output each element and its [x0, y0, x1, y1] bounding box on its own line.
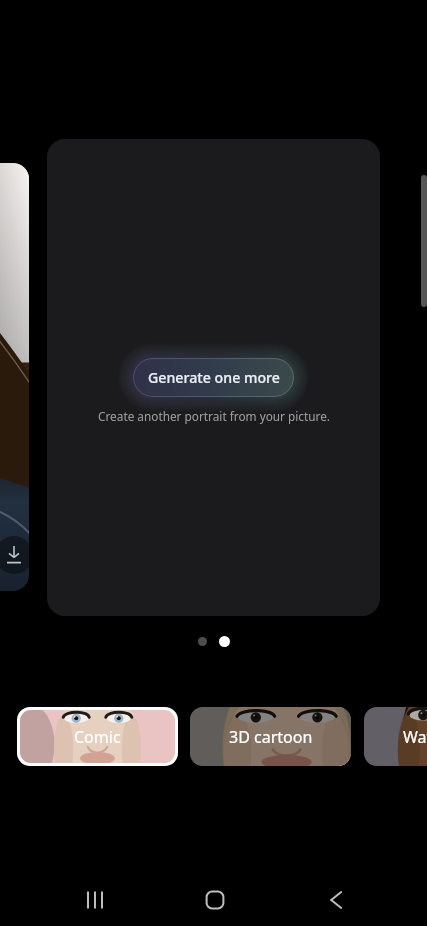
staticText: Create another portrait from your pictur…: [98, 408, 330, 424]
staticText: Comic: [74, 726, 121, 748]
button[interactable]: Recent apps: [54, 860, 135, 926]
button[interactable]: Download: [0, 536, 29, 574]
staticText: Watercolor: [403, 726, 427, 748]
staticText: Generate one more: [148, 368, 280, 387]
button[interactable]: Home: [174, 860, 255, 926]
button[interactable]: Watercolor: [364, 707, 427, 766]
button[interactable]: Generate one more: [118, 343, 309, 412]
button[interactable]: 3D cartoon: [190, 707, 351, 766]
staticText: 3D cartoon: [229, 726, 313, 748]
button[interactable]: Back: [294, 860, 375, 926]
button[interactable]: Comic: [20, 710, 175, 763]
